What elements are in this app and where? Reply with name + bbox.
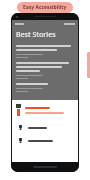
- button[interactable]: Menu item: [18, 138, 78, 143]
- button[interactable]: [16, 62, 74, 83]
- button[interactable]: Menu item: [18, 125, 78, 130]
- staticText: Easy Accessibility: [23, 4, 67, 11]
- button[interactable]: Easy Accessibility: [17, 2, 73, 13]
- button[interactable]: [16, 83, 74, 96]
- button[interactable]: [12, 100, 78, 119]
- button[interactable]: [16, 45, 74, 62]
- staticText: Best Stories: [16, 30, 56, 40]
